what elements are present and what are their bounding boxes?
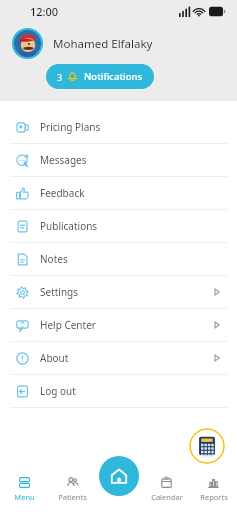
button[interactable]: Reports: [190, 466, 237, 512]
button[interactable]: Publications: [0, 210, 237, 242]
staticText: 3: [57, 71, 63, 83]
button[interactable]: Calendar: [143, 466, 190, 512]
button[interactable]: Log out: [0, 375, 237, 407]
staticText: Pricing Plans: [40, 120, 101, 134]
staticText: About: [40, 351, 69, 365]
button[interactable]: Settings: [0, 276, 237, 308]
staticText: 12:00: [30, 4, 59, 19]
staticText: Settings: [40, 285, 79, 299]
staticText: Notes: [40, 252, 68, 266]
staticText: Notifications: [84, 70, 143, 83]
staticText: Publications: [40, 219, 98, 233]
button[interactable]: Patients: [48, 466, 96, 512]
button[interactable]: Messages: [0, 144, 237, 176]
button[interactable]: Notes: [0, 243, 237, 275]
staticText: Help Center: [40, 318, 96, 332]
button[interactable]: Help Center: [0, 309, 237, 341]
staticText: Reports: [200, 492, 228, 502]
staticText: Log out: [40, 384, 76, 398]
staticText: Menu: [14, 492, 35, 502]
button[interactable]: Feedback: [0, 177, 237, 209]
staticText: Patients: [58, 492, 87, 502]
button[interactable]: Calculator: [189, 428, 225, 464]
button[interactable]: Home: [99, 456, 139, 496]
staticText: Calendar: [151, 492, 183, 502]
button[interactable]: About: [0, 342, 237, 374]
button[interactable]: 3: [46, 64, 154, 89]
staticText: Feedback: [40, 186, 85, 200]
button[interactable]: Menu: [0, 466, 48, 512]
staticText: Mohamed Elfalaky: [53, 36, 153, 52]
staticText: Messages: [40, 153, 87, 167]
button[interactable]: Pricing Plans: [0, 111, 237, 143]
